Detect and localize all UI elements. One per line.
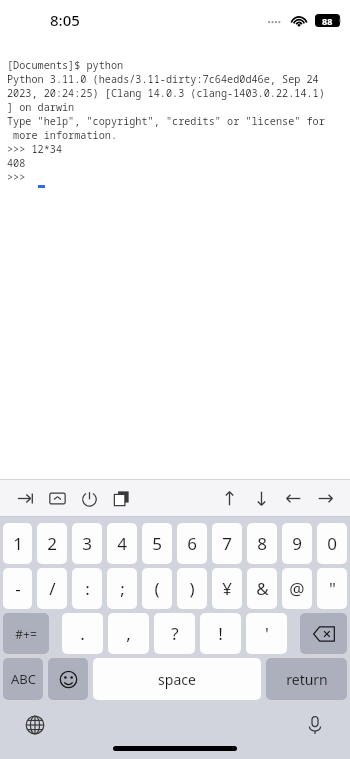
button[interactable]: 5 xyxy=(142,523,172,564)
staticText: [Documents]$ python xyxy=(7,58,124,72)
staticText: 0 xyxy=(327,532,337,555)
button[interactable]: " xyxy=(317,568,347,609)
button[interactable]: Dictation xyxy=(302,712,328,738)
staticText: ' xyxy=(265,622,269,645)
staticText: 7 xyxy=(222,532,232,555)
button[interactable]: 1 xyxy=(3,523,32,564)
staticText: >>> xyxy=(7,170,26,184)
button[interactable]: Paste xyxy=(110,487,132,509)
staticText: : xyxy=(85,577,90,600)
staticText: / xyxy=(49,577,56,600)
staticText: , xyxy=(126,622,131,645)
staticText: 8:05 xyxy=(50,10,80,30)
button[interactable]: ABC xyxy=(3,658,43,700)
staticText: #+= xyxy=(15,626,37,642)
button[interactable]: Up xyxy=(218,487,240,509)
staticText: 4 xyxy=(117,532,127,555)
staticText: 9 xyxy=(292,532,302,555)
button[interactable]: : xyxy=(72,568,102,609)
button[interactable]: 0 xyxy=(317,523,347,564)
staticText: more information. xyxy=(7,128,118,142)
button[interactable]: 2 xyxy=(37,523,67,564)
button[interactable]: ( xyxy=(142,568,172,609)
staticText: 6 xyxy=(187,532,197,555)
staticText: 5 xyxy=(152,532,162,555)
staticText: Python 3.11.0 (heads/3.11-dirty:7c64ed0d… xyxy=(7,72,319,86)
staticText: 3 xyxy=(82,532,92,555)
button[interactable]: Right xyxy=(314,487,336,509)
button[interactable]: . xyxy=(62,613,103,654)
button[interactable]: 9 xyxy=(282,523,312,564)
staticText: ] on darwin xyxy=(7,100,75,114)
button[interactable]: ¥ xyxy=(212,568,242,609)
button[interactable]: & xyxy=(247,568,277,609)
staticText: space xyxy=(158,670,196,689)
button[interactable]: Tab xyxy=(14,487,36,509)
button[interactable]: Emoji xyxy=(48,658,88,700)
button[interactable]: 8 xyxy=(247,523,277,564)
button[interactable]: Undo xyxy=(78,487,100,509)
button[interactable]: Delete xyxy=(300,613,347,654)
button[interactable]: Control xyxy=(46,487,68,509)
button[interactable]: ! xyxy=(200,613,241,654)
staticText: . xyxy=(80,622,85,645)
staticText: ; xyxy=(120,577,125,600)
button[interactable]: ' xyxy=(246,613,287,654)
button[interactable]: 4 xyxy=(107,523,137,564)
staticText: ABC xyxy=(11,670,36,688)
button[interactable]: 3 xyxy=(72,523,102,564)
button[interactable]: , xyxy=(108,613,149,654)
staticText: return xyxy=(286,670,328,689)
button[interactable]: / xyxy=(37,568,67,609)
button[interactable]: #+= xyxy=(3,613,49,654)
staticText: 2 xyxy=(47,532,57,555)
staticText: 408 xyxy=(7,156,26,170)
button[interactable]: ? xyxy=(154,613,195,654)
button[interactable]: Left xyxy=(282,487,304,509)
button[interactable]: ) xyxy=(177,568,207,609)
button[interactable]: return xyxy=(266,658,347,700)
staticText: ) xyxy=(189,577,195,600)
staticText: ( xyxy=(154,577,160,600)
staticText: - xyxy=(15,577,21,600)
staticText: 2023, 20:24:25) [Clang 14.0.3 (clang-140… xyxy=(7,86,325,100)
button[interactable]: Switch keyboard xyxy=(22,712,48,738)
staticText: " xyxy=(329,577,336,600)
staticText: >>> 12*34 xyxy=(7,142,63,156)
staticText: ? xyxy=(171,622,179,645)
staticText: ! xyxy=(218,622,223,645)
button[interactable]: space xyxy=(93,658,261,700)
staticText: ¥ xyxy=(222,577,232,600)
staticText: Type "help", "copyright", "credits" or "… xyxy=(7,114,325,128)
button[interactable]: ; xyxy=(107,568,137,609)
staticText: 1 xyxy=(13,532,23,555)
button[interactable]: @ xyxy=(282,568,312,609)
button[interactable]: Down xyxy=(250,487,272,509)
staticText: & xyxy=(256,577,269,600)
staticText: 88 xyxy=(322,15,333,27)
button[interactable]: - xyxy=(3,568,32,609)
button[interactable]: 7 xyxy=(212,523,242,564)
staticText: @ xyxy=(289,577,305,600)
button[interactable]: 6 xyxy=(177,523,207,564)
staticText: 8 xyxy=(257,532,267,555)
